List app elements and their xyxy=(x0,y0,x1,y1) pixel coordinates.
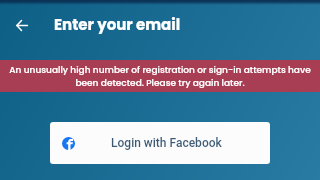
button[interactable]: Login with Facebook xyxy=(50,122,270,164)
staticText: Login with Facebook xyxy=(111,136,222,150)
staticText: Enter your email xyxy=(54,14,181,35)
staticText: An unusually high number of registration… xyxy=(7,64,313,89)
button[interactable]: Back xyxy=(0,3,44,47)
